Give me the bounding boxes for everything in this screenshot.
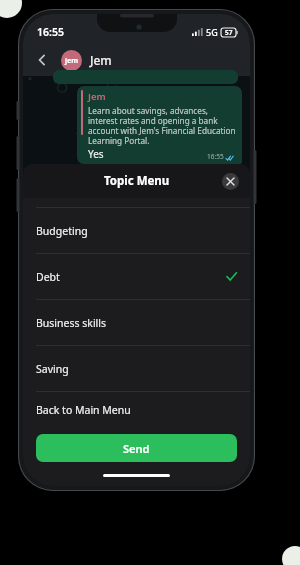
staticText: Send — [123, 441, 150, 456]
staticText: 16:55 — [207, 152, 224, 161]
button[interactable]: Jem — [90, 52, 112, 68]
staticText: 5G — [206, 26, 218, 38]
button[interactable]: jem — [61, 50, 82, 71]
staticText: Saving — [36, 362, 69, 376]
staticText: Yes — [88, 147, 104, 161]
button[interactable]: Budgeting — [23, 208, 250, 253]
staticText: Back to Main Menu — [36, 403, 131, 417]
button[interactable]: Saving — [23, 346, 250, 391]
staticText: 57 — [225, 28, 233, 37]
staticText: Budgeting — [36, 224, 88, 238]
staticText: Debt — [36, 270, 60, 284]
button[interactable]: Send — [36, 434, 237, 462]
button[interactable]: Business skills — [23, 300, 250, 345]
button[interactable]: Close — [222, 173, 239, 190]
staticText: 16:55 — [37, 25, 64, 39]
button[interactable]: Back — [29, 47, 55, 73]
staticText: Jem — [88, 90, 106, 103]
staticText: Learn about savings, advances, interest … — [88, 105, 236, 146]
button[interactable]: Back to Main Menu — [23, 392, 250, 428]
button[interactable]: Debt — [23, 254, 250, 299]
staticText: jem — [65, 56, 79, 66]
staticText: Business skills — [36, 316, 107, 330]
staticText: Welcome to Jem's Learning Portal! — [39, 473, 197, 486]
staticText: Topic Menu — [104, 173, 170, 189]
